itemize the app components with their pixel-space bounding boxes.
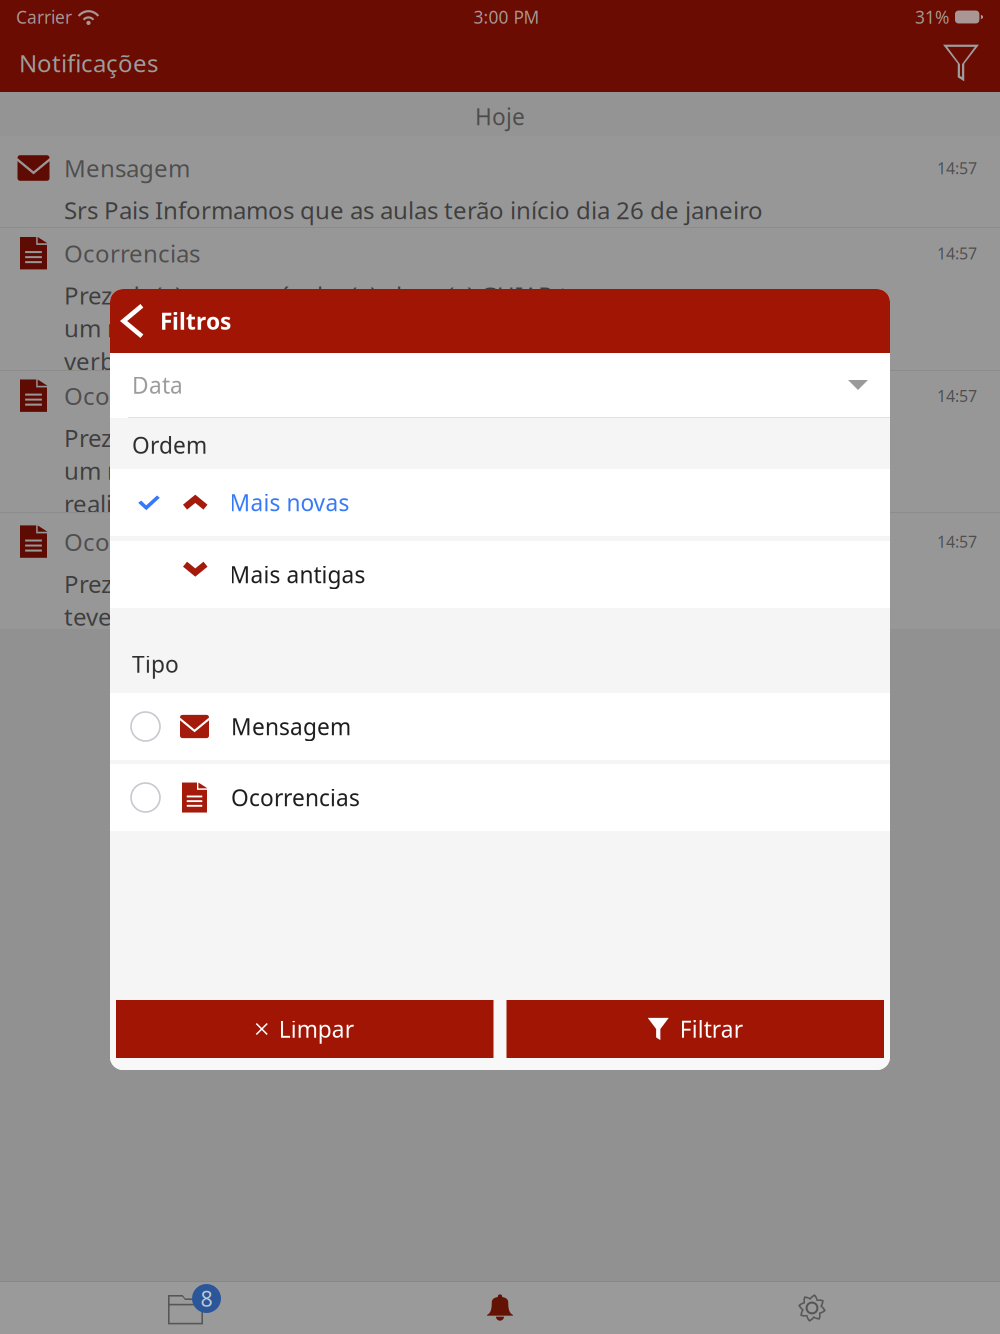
- staticText: 8: [200, 1284, 212, 1313]
- button[interactable]: Voltar: [110, 289, 160, 353]
- button[interactable]: Mais antigas: [110, 541, 890, 608]
- staticText: Ordem: [132, 430, 207, 460]
- staticText: Limpar: [279, 1014, 354, 1044]
- button[interactable]: Data: [110, 353, 890, 417]
- staticText: Mensagem: [231, 711, 351, 741]
- staticText: Data: [132, 370, 183, 400]
- staticText: Notificações: [19, 47, 158, 79]
- staticText: Mensagem: [64, 152, 190, 184]
- staticText: Filtros: [160, 306, 231, 336]
- staticText: um registro de ocorrência. Motivo: Agred…: [64, 312, 549, 344]
- staticText: Ocorrencias: [64, 237, 200, 269]
- staticText: Prezado(a) responsável, o(a) aluno(a) GU…: [64, 568, 553, 599]
- staticText: Mais novas: [229, 487, 349, 517]
- staticText: Prezado(a) responsável, o(a) aluno(a) GU…: [64, 422, 607, 454]
- staticText: Mais antigas: [229, 559, 365, 589]
- button[interactable]: Limpar: [116, 1000, 493, 1058]
- staticText: Filtrar: [680, 1014, 743, 1044]
- button[interactable]: Filtros: [933, 35, 989, 91]
- staticText: 14:57: [937, 157, 977, 179]
- button[interactable]: Filtrar: [506, 1000, 884, 1058]
- button[interactable]: Arquivos: [0, 1282, 333, 1334]
- button[interactable]: Ocorrencias: [110, 764, 890, 831]
- button[interactable]: Configurações: [667, 1282, 1000, 1334]
- staticText: um registro de ocorrência. Observações: …: [64, 455, 570, 486]
- staticText: Tipo: [132, 649, 179, 679]
- staticText: Ocorrencias: [64, 380, 200, 412]
- staticText: verbalmente: [64, 345, 208, 377]
- staticText: teve um registro de OCORRÊNCIA DE AMIGO: [64, 600, 566, 632]
- button[interactable]: Notificações: [333, 1282, 667, 1334]
- staticText: 31%: [915, 5, 949, 28]
- staticText: Ocorrencias: [231, 782, 360, 812]
- button[interactable]: Mais novas: [110, 469, 890, 536]
- staticText: Ocorrencias: [64, 526, 200, 558]
- staticText: 3:00 PM: [473, 5, 539, 28]
- staticText: Carrier: [16, 5, 72, 28]
- staticText: Srs Pais Informamos que as aulas terão i…: [64, 194, 763, 226]
- staticText: 14:57: [937, 243, 977, 264]
- staticText: Hoje: [475, 101, 525, 131]
- staticText: 14:57: [937, 385, 977, 406]
- button[interactable]: Mensagem: [110, 693, 890, 760]
- staticText: 14:57: [937, 531, 977, 552]
- staticText: Prezado(a) responsável, o(a) aluno(a) GU…: [64, 279, 607, 311]
- staticText: realizou: [64, 487, 153, 519]
